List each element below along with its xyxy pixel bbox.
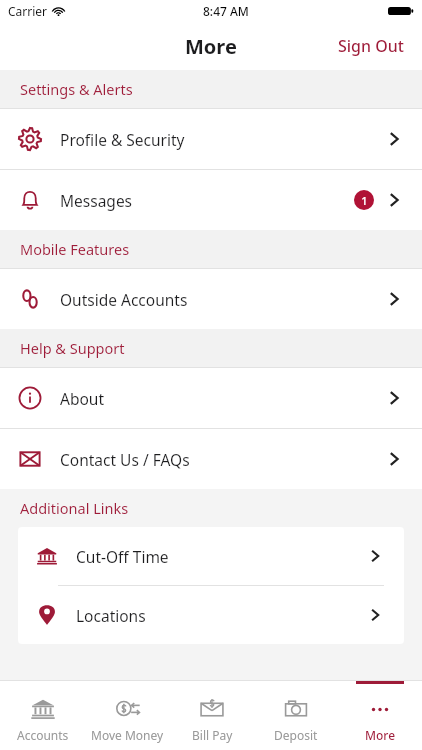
button[interactable]: About [0,368,422,428]
staticText: Mobile Features [20,239,130,259]
staticText: Contact Us / FAQs [60,449,190,470]
staticText: Settings & Alerts [20,79,133,99]
staticText: 1 [361,193,368,208]
staticText: About [60,388,104,409]
staticText: Locations [76,605,146,626]
staticText: Accounts [17,727,69,743]
button[interactable]: Locations [18,586,404,644]
staticText: Deposit [274,727,318,743]
button[interactable]: Contact Us / FAQs [0,429,422,489]
staticText: Bill Pay [192,727,233,743]
button[interactable]: Cut-Off Time [18,527,404,585]
staticText: 8:47 AM [203,3,249,19]
staticText: Cut-Off Time [76,546,169,567]
staticText: More [365,727,396,743]
staticText: Sign Out [338,35,404,57]
staticText: Carrier [8,3,48,19]
button[interactable]: Outside Accounts [0,269,422,329]
button[interactable]: Accounts [0,681,85,750]
button[interactable]: Messages [0,170,422,230]
staticText: Messages [60,190,133,211]
button[interactable]: Sign Out [320,25,422,67]
staticText: Outside Accounts [60,289,188,310]
button[interactable]: Deposit [254,681,338,750]
staticText: Profile & Security [60,129,185,150]
button[interactable]: More [338,681,422,750]
staticText: Additional Links [20,498,129,518]
staticText: Help & Support [20,338,125,358]
button[interactable]: Bill Pay [170,681,254,750]
staticText: More [185,33,237,60]
staticText: Move Money [91,727,164,743]
button[interactable]: Profile & Security [0,109,422,169]
button[interactable]: Move Money [85,681,170,750]
